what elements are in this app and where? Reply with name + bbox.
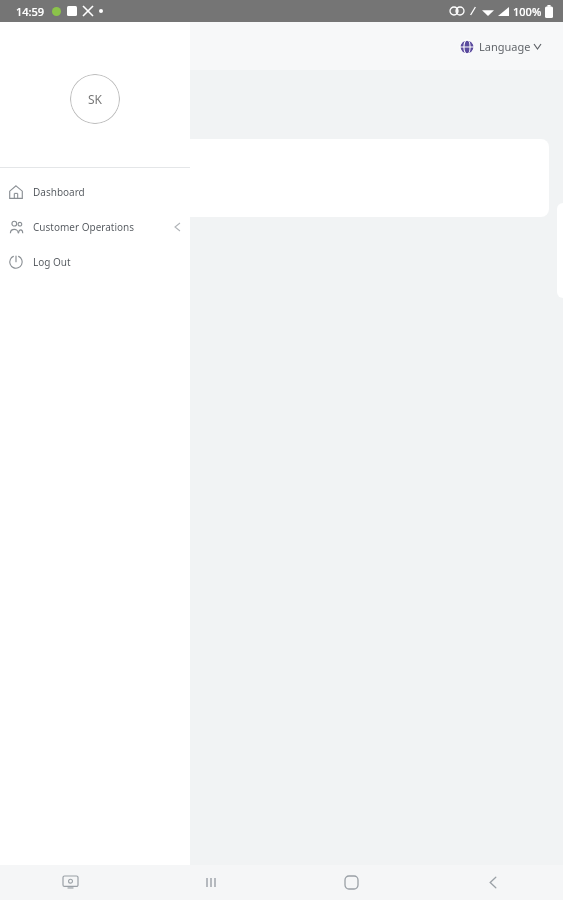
button[interactable]: Log Out <box>0 244 190 279</box>
button[interactable]: SK <box>70 74 120 124</box>
staticText: Language <box>479 39 531 54</box>
staticText: 100% <box>513 4 542 19</box>
staticText: Customer Operations <box>33 220 135 234</box>
button[interactable] <box>14 139 549 217</box>
staticText: Log Out <box>33 255 71 269</box>
staticText: Dashboard <box>33 185 85 199</box>
button[interactable]: Dashboard <box>0 174 190 209</box>
staticText: SK <box>88 91 103 107</box>
button[interactable]: Customer Operations <box>0 209 190 244</box>
button[interactable]: Recent apps <box>140 865 281 900</box>
button[interactable]: Home <box>281 865 422 900</box>
button[interactable]: Screenshot <box>0 865 140 900</box>
button[interactable]: Language <box>456 35 545 58</box>
staticText: 14:59 <box>16 4 45 19</box>
button[interactable]: Back <box>422 865 563 900</box>
